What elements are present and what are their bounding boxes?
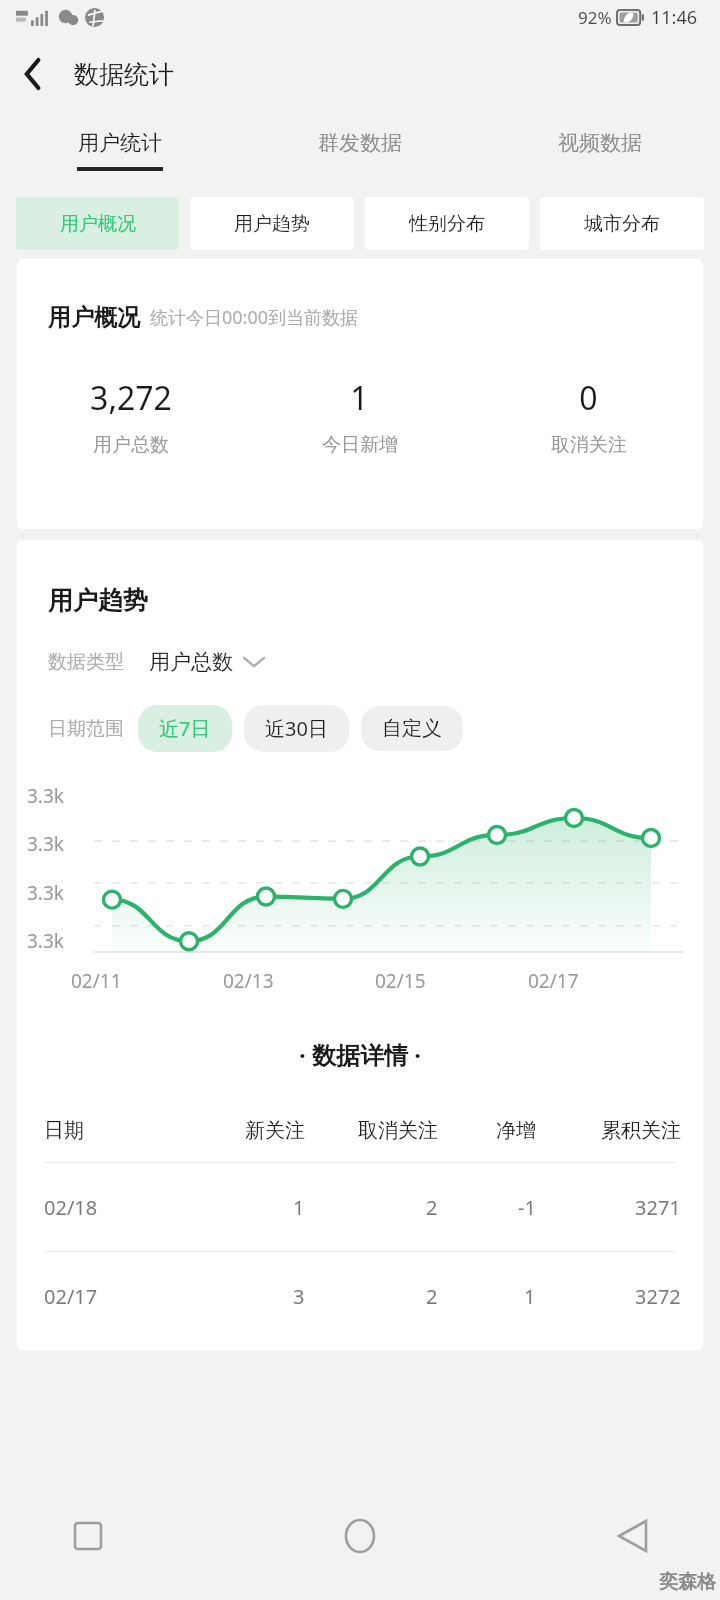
button[interactable]: 性别分布: [365, 197, 529, 250]
staticText: 城市分布: [584, 212, 660, 236]
button[interactable]: 0: [474, 376, 703, 457]
staticText: 1: [524, 1283, 536, 1310]
button[interactable]: Home: [332, 1508, 388, 1564]
staticText: 02/13: [223, 968, 274, 994]
staticText: -1: [518, 1194, 536, 1221]
staticText: 02/11: [71, 968, 122, 994]
staticText: 3,272: [90, 376, 172, 420]
staticText: 3.3k: [27, 831, 64, 857]
staticText: 用户统计: [78, 130, 162, 156]
button[interactable]: 城市分布: [540, 197, 704, 250]
button[interactable]: 群发数据: [240, 114, 480, 186]
staticText: 今日新增: [322, 433, 398, 457]
staticText: 用户趋势: [48, 585, 148, 616]
staticText: 1: [293, 1194, 305, 1221]
staticText: 0: [579, 376, 598, 420]
staticText: 视频数据: [558, 130, 642, 156]
staticText: 02/17: [44, 1283, 98, 1310]
staticText: 3.3k: [27, 783, 64, 809]
button[interactable]: 3,272: [17, 376, 245, 457]
button[interactable]: 用户概况: [16, 197, 179, 250]
staticText: 日期: [44, 1118, 84, 1143]
staticText: 用户总数: [149, 649, 233, 675]
button[interactable]: Back: [10, 50, 58, 98]
staticText: 群发数据: [318, 130, 402, 156]
button[interactable]: 近30日: [244, 705, 349, 752]
staticText: 02/17: [528, 968, 579, 994]
button[interactable]: 自定义: [361, 706, 463, 751]
staticText: 2: [426, 1194, 438, 1221]
staticText: 数据统计: [74, 59, 174, 90]
button[interactable]: Back: [604, 1508, 660, 1564]
staticText: 自定义: [382, 716, 442, 741]
staticText: 近7日: [159, 715, 211, 742]
button[interactable]: 1: [245, 376, 474, 457]
button[interactable]: 数据类型: [48, 649, 264, 675]
staticText: 用户趋势: [234, 212, 310, 236]
staticText: 统计今日00:00到当前数据: [150, 305, 359, 330]
staticText: 92%: [578, 6, 612, 29]
staticText: 1: [350, 376, 369, 420]
staticText: 累积关注: [601, 1118, 681, 1143]
staticText: 净增: [496, 1118, 536, 1143]
staticText: 取消关注: [358, 1118, 438, 1143]
staticText: 新关注: [245, 1118, 305, 1143]
staticText: 日期范围: [48, 717, 124, 741]
staticText: 数据类型: [48, 650, 124, 674]
staticText: 性别分布: [409, 212, 485, 236]
staticText: 3: [293, 1283, 305, 1310]
staticText: 02/18: [44, 1194, 98, 1221]
staticText: 3271: [635, 1194, 681, 1221]
staticText: 3.3k: [27, 880, 64, 906]
staticText: 用户概况: [60, 212, 136, 236]
staticText: · 数据详情 ·: [299, 1038, 421, 1071]
staticText: 取消关注: [551, 433, 627, 457]
staticText: 2: [426, 1283, 438, 1310]
button[interactable]: Recents: [60, 1508, 116, 1564]
staticText: 11:46: [651, 5, 698, 30]
button[interactable]: 用户趋势: [190, 197, 354, 250]
button[interactable]: 视频数据: [480, 114, 720, 186]
staticText: 3272: [635, 1283, 681, 1310]
staticText: 近30日: [265, 715, 328, 742]
button[interactable]: 用户统计: [0, 114, 240, 186]
staticText: 3.3k: [27, 928, 64, 954]
staticText: 用户总数: [93, 433, 169, 457]
staticText: 02/15: [375, 968, 426, 994]
staticText: 用户概况: [48, 303, 140, 332]
staticText: 奕森格: [659, 1570, 716, 1594]
button[interactable]: 近7日: [138, 705, 232, 752]
